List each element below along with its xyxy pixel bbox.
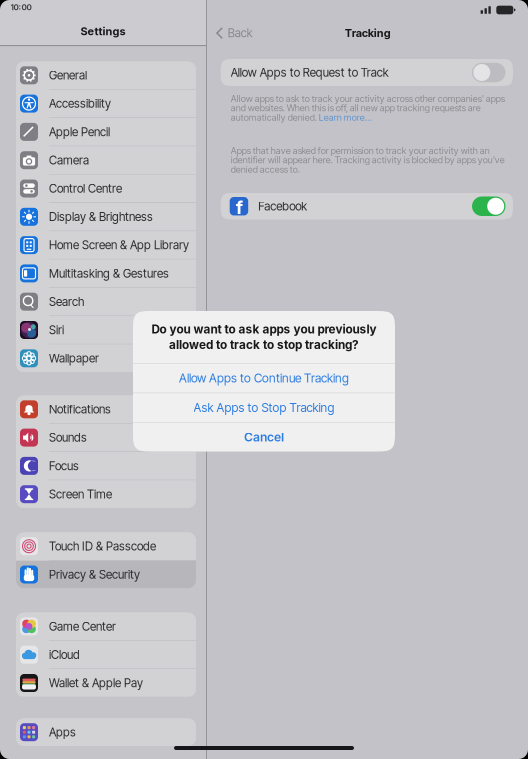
staticText: Learn more… [319,112,372,123]
staticText: Wallet & Apple Pay [49,676,143,690]
button[interactable]: Touch ID & Passcode [16,532,196,560]
button[interactable]: Wallpaper [16,344,196,372]
staticText: Allow Apps to Request to Track [231,65,389,80]
staticText: 10:00 [10,2,31,12]
button[interactable]: Display & Brightness [16,203,196,231]
button[interactable]: Learn more… [319,112,372,123]
button[interactable]: Allow Apps to Continue Tracking [133,364,395,392]
staticText: Sounds [49,430,87,445]
button[interactable]: Accessibility [16,90,196,117]
staticText: Camera [49,153,89,167]
staticText: denied access to. [231,164,300,175]
staticText: Screen Time [49,487,112,501]
button[interactable]: Search [16,288,196,315]
button[interactable]: Apple Pencil [16,118,196,146]
staticText: Display & Brightness [49,210,153,224]
button[interactable]: Allow Apps to Request to Track [221,59,513,86]
staticText: Cancel [244,430,284,444]
button[interactable]: Wallet & Apple Pay [16,669,196,697]
button[interactable]: Cancel [133,423,395,451]
staticText: Siri [49,323,64,337]
button[interactable]: Focus [16,452,196,480]
staticText: Back [228,26,253,40]
staticText: iCloud [49,648,80,662]
button[interactable]: Notifications [16,395,196,423]
button[interactable]: Screen Time [16,480,196,508]
button[interactable]: Control Centre [16,175,196,202]
staticText: Do you want to ask apps you previously [151,322,376,336]
staticText: Control Centre [49,181,122,196]
staticText: Facebook [258,199,307,213]
button[interactable]: Back [207,20,263,46]
staticText: Multitasking & Gestures [49,266,169,280]
button[interactable]: Ask Apps to Stop Tracking [133,393,395,422]
staticText: Touch ID & Passcode [49,539,156,553]
staticText: Ask Apps to Stop Tracking [193,400,334,415]
staticText: Privacy & Security [49,567,140,582]
staticText: Allow apps to ask to track your activity… [231,93,505,104]
staticText: Allow Apps to Continue Tracking [179,371,349,385]
staticText: automatically denied. [231,112,319,123]
button[interactable]: Privacy & Security [16,561,196,588]
staticText: Apple Pencil [49,125,110,139]
staticText: allowed to track to stop tracking? [169,338,359,352]
staticText: identifier will appear here. Tracking ac… [231,154,505,165]
button[interactable]: Apps [16,718,196,746]
staticText: Apps [49,725,76,739]
button[interactable]: iCloud [16,641,196,668]
staticText: Focus [49,459,79,473]
staticText: Game Center [49,619,116,633]
staticText: Settings [80,25,125,38]
staticText: Apps that have asked for permission to t… [231,145,490,156]
staticText: Tracking [345,26,391,40]
button[interactable]: Camera [16,146,196,174]
button[interactable]: Game Center [16,613,196,640]
staticText: Accessibility [49,96,111,111]
button[interactable]: Siri [16,316,196,344]
button[interactable]: Multitasking & Gestures [16,260,196,287]
staticText: and websites. When this is off, all new … [231,102,481,113]
staticText: f [236,196,243,218]
button[interactable]: f [221,193,513,219]
staticText: Wallpaper [49,351,99,365]
staticText: Notifications [49,402,111,416]
button[interactable]: Home Screen & App Library [16,231,196,259]
button[interactable]: Sounds [16,424,196,451]
staticText: General [49,68,87,82]
button[interactable]: General [16,61,196,89]
staticText: Home Screen & App Library [49,238,189,252]
staticText: Search [49,295,84,309]
